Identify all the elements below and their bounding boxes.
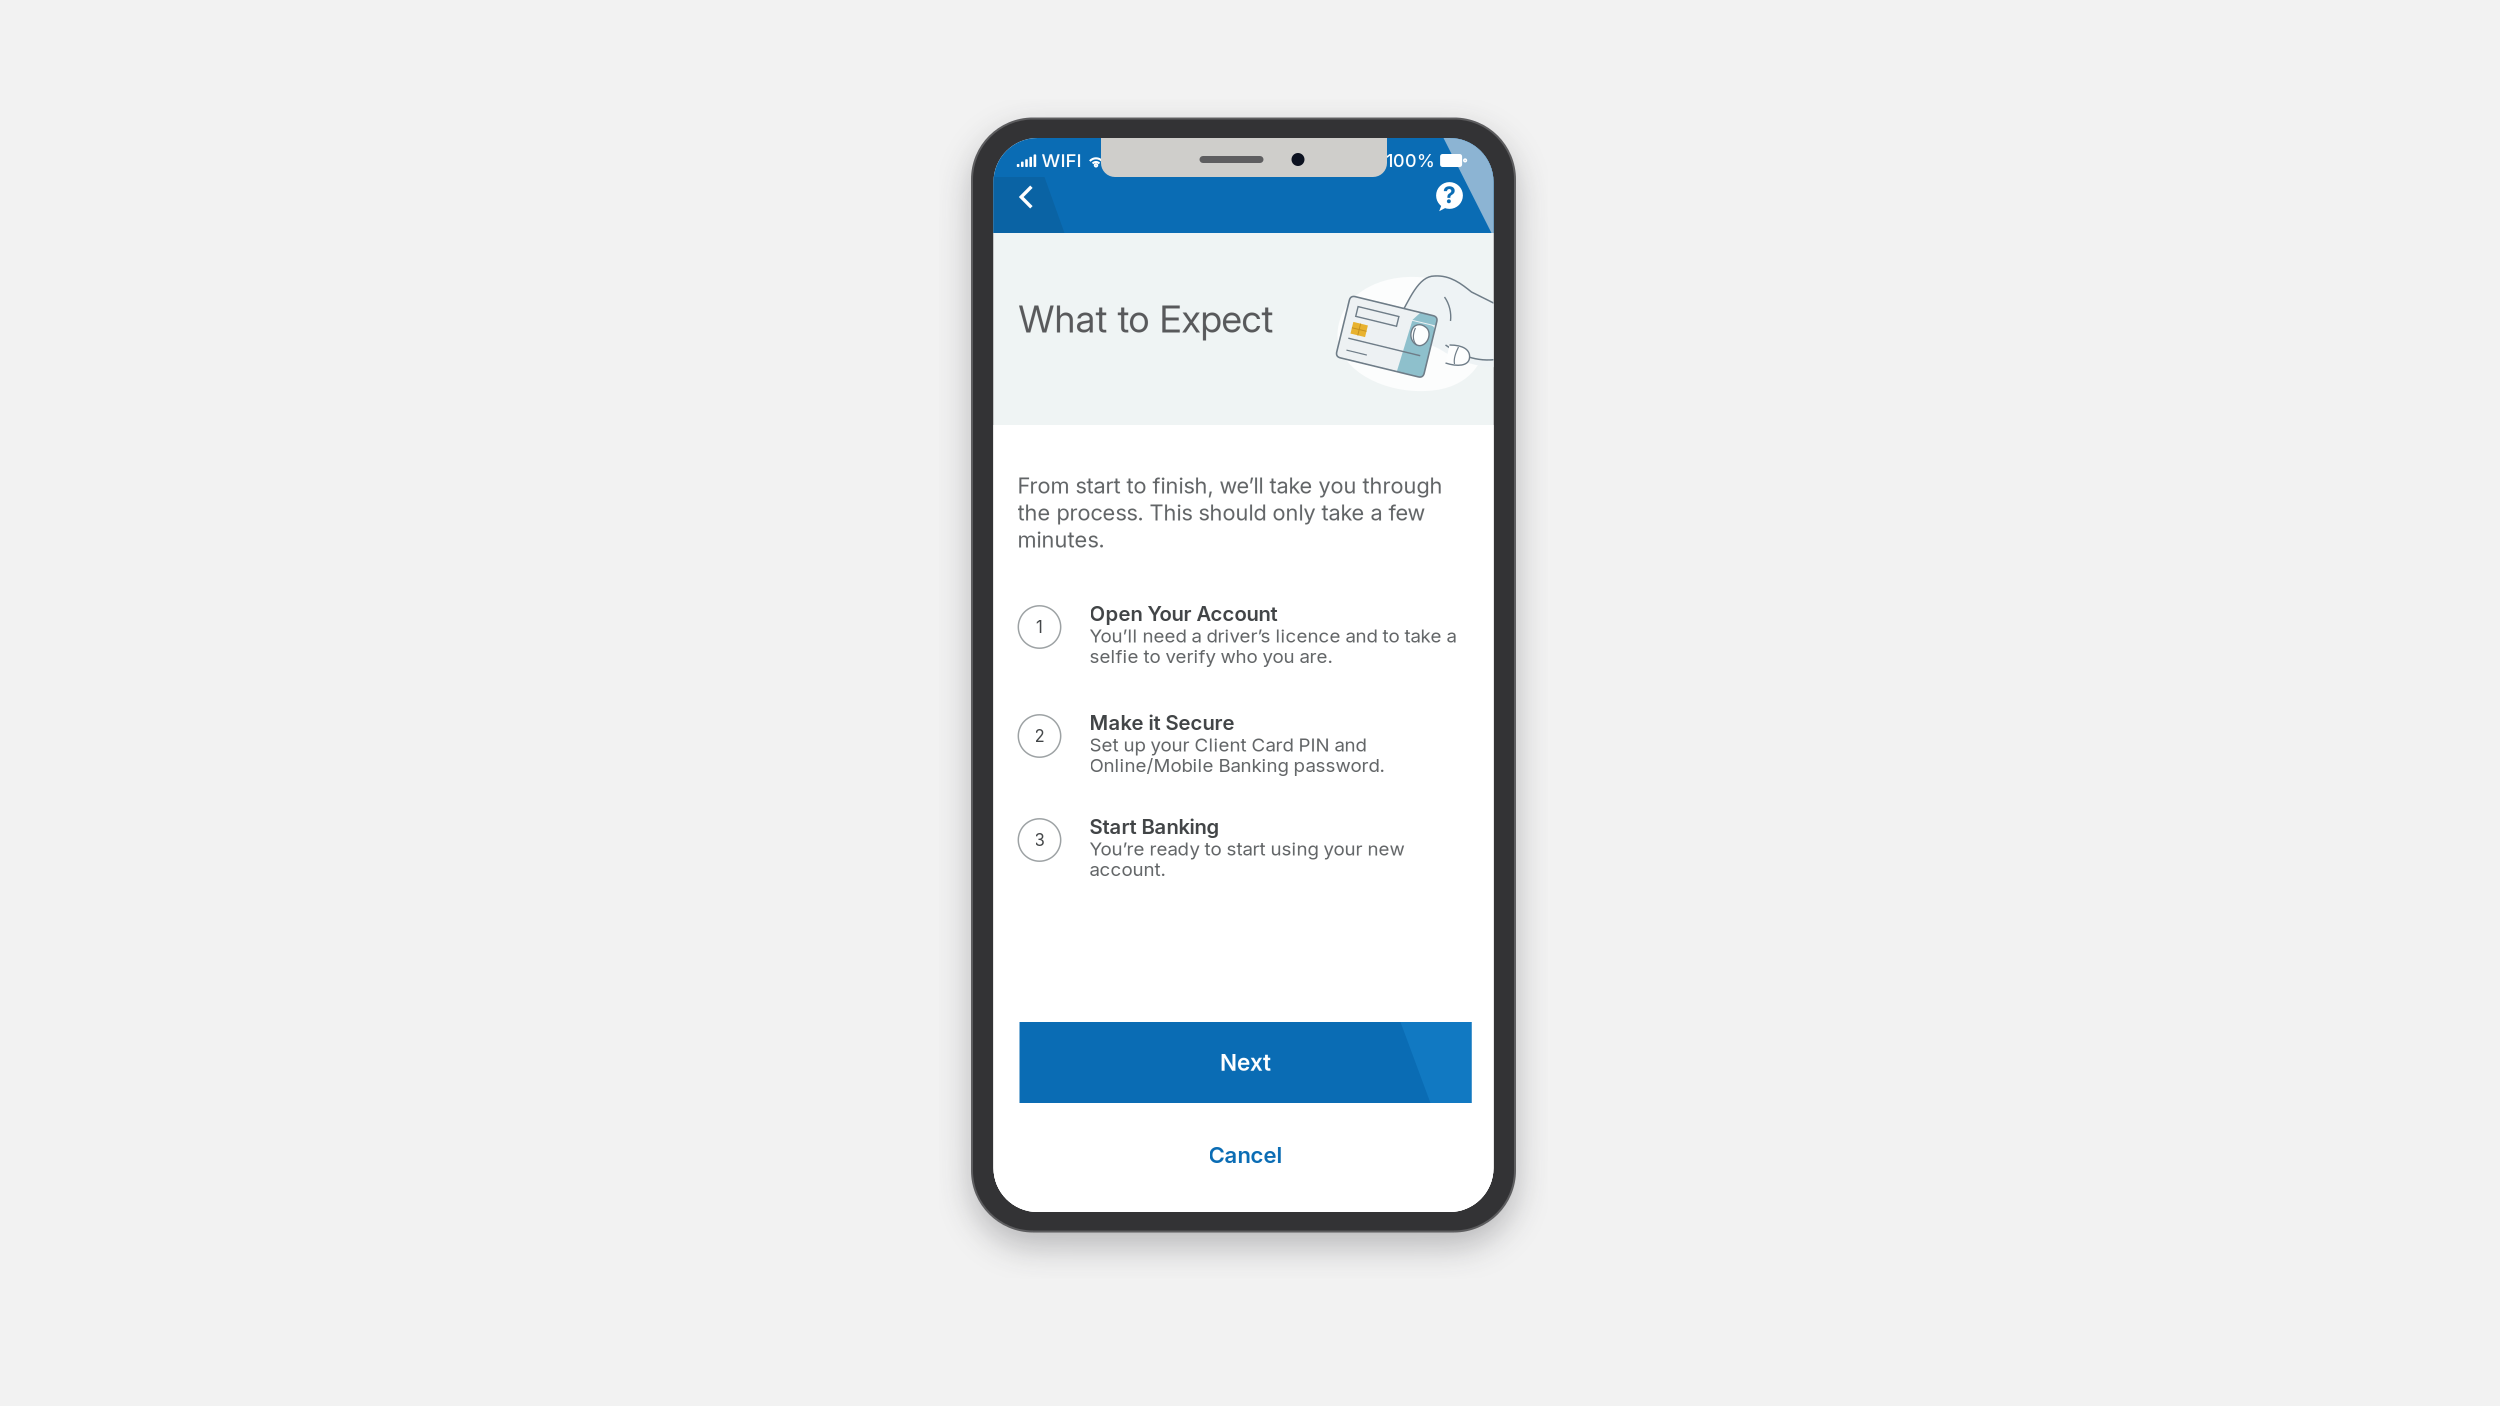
staticText: account. — [1089, 858, 1165, 881]
staticText: ? — [1443, 181, 1456, 209]
staticText: Open Your Account — [1089, 601, 1277, 626]
staticText: minutes. — [1017, 526, 1104, 553]
staticText: 2 — [1034, 726, 1044, 746]
staticText: Make it Secure — [1089, 710, 1234, 735]
staticText: You’re ready to start using your new — [1089, 837, 1404, 860]
button[interactable]: Help — [1422, 172, 1476, 222]
staticText: From start to finish, we’ll take you thr… — [1017, 472, 1442, 499]
staticText: 3 — [1034, 830, 1044, 850]
staticText: Cancel — [1208, 1142, 1282, 1168]
staticText: WIFI — [1041, 149, 1081, 172]
button[interactable]: Next — [1019, 1022, 1471, 1103]
staticText: You’ll need a driver’s licence and to ta… — [1089, 624, 1456, 647]
staticText: Set up your Client Card PIN and — [1089, 733, 1366, 756]
staticText: 1 — [1036, 617, 1043, 637]
staticText: Next — [1220, 1049, 1271, 1076]
staticText: selfie to verify who you are. — [1089, 645, 1332, 668]
button[interactable]: Cancel — [1019, 1132, 1471, 1178]
staticText: Online/Mobile Banking password. — [1089, 754, 1384, 777]
staticText: Start Banking — [1089, 814, 1219, 839]
button[interactable]: Back — [999, 172, 1053, 222]
staticText: 100% — [1386, 150, 1435, 171]
staticText: What to Expect — [1018, 296, 1273, 342]
staticText: the process. This should only take a few — [1017, 499, 1425, 526]
